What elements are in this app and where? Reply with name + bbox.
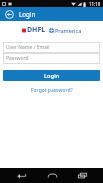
button[interactable]: Back <box>4 9 15 20</box>
button[interactable]: Forgot password? <box>28 86 76 95</box>
staticText: DHFL <box>27 25 46 35</box>
staticText: Forgot password? <box>31 87 73 94</box>
staticText: 11:19 <box>89 1 101 7</box>
staticText: Password <box>6 55 29 62</box>
button[interactable]: Back <box>11 168 31 183</box>
staticText: Login <box>19 10 36 18</box>
button[interactable]: Recent apps <box>72 168 92 183</box>
button[interactable]: Login <box>3 70 100 81</box>
button[interactable]: User Name / Email <box>3 42 100 53</box>
staticText: Login <box>44 72 60 80</box>
staticText: Pramerica <box>55 27 82 34</box>
button[interactable]: Password <box>3 53 100 64</box>
staticText: User Name / Email <box>6 44 50 51</box>
button[interactable]: Home <box>42 168 62 183</box>
